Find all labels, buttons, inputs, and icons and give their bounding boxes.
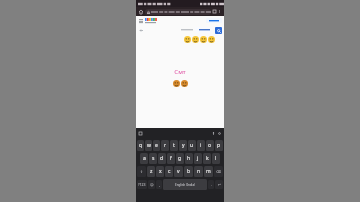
- button[interactable]: Menu: [138, 18, 144, 24]
- button[interactable]: t: [170, 140, 178, 151]
- staticText: ?123: [138, 182, 146, 187]
- button[interactable]: h: [185, 153, 193, 164]
- button[interactable]: m: [204, 166, 213, 177]
- staticText: h: [187, 155, 191, 162]
- staticText: n: [197, 168, 201, 175]
- button[interactable]: [145, 9, 211, 15]
- staticText: ↵: [218, 183, 221, 187]
- staticText: f: [170, 155, 172, 162]
- staticText: c: [168, 168, 171, 175]
- staticText: k: [206, 155, 209, 162]
- button[interactable]: e: [153, 140, 160, 151]
- staticText: ⇧: [140, 170, 143, 174]
- button[interactable]: v: [174, 166, 183, 177]
- button[interactable]: g: [176, 153, 184, 164]
- button[interactable]: b: [184, 166, 193, 177]
- button[interactable]: z: [147, 166, 155, 177]
- staticText: ☺: [150, 183, 154, 187]
- button[interactable]: English (India): [163, 179, 207, 190]
- button[interactable]: r: [161, 140, 169, 151]
- button[interactable]: j: [194, 153, 202, 164]
- button[interactable]: u: [188, 140, 196, 151]
- staticText: o: [208, 142, 212, 149]
- button[interactable]: [195, 27, 213, 33]
- button[interactable]: o: [206, 140, 214, 151]
- button[interactable]: c: [165, 166, 173, 177]
- staticText: a: [143, 155, 146, 162]
- button[interactable]: Home: [138, 9, 144, 15]
- staticText: b: [187, 168, 191, 175]
- staticText: ,: [159, 182, 160, 187]
- button[interactable]: a: [140, 153, 148, 164]
- button[interactable]: Tabs: [212, 9, 217, 14]
- staticText: s: [152, 155, 155, 162]
- button[interactable]: x: [156, 166, 164, 177]
- staticText: i: [200, 142, 202, 149]
- button[interactable]: q: [137, 140, 144, 151]
- staticText: j: [197, 155, 199, 162]
- staticText: t: [173, 142, 175, 149]
- button[interactable]: ↵: [215, 180, 223, 189]
- staticText: w: [147, 142, 151, 149]
- staticText: r: [164, 142, 167, 149]
- button[interactable]: w: [145, 140, 152, 151]
- staticText: u: [190, 142, 194, 149]
- button[interactable]: Settings: [217, 131, 222, 136]
- staticText: e: [155, 142, 158, 149]
- button[interactable]: Search: [215, 27, 222, 34]
- staticText: .: [211, 182, 212, 187]
- button[interactable]: [206, 18, 222, 23]
- button[interactable]: ?123: [137, 180, 147, 189]
- staticText: m: [206, 168, 211, 175]
- button[interactable]: f: [167, 153, 175, 164]
- button[interactable]: i: [197, 140, 205, 151]
- staticText: z: [150, 168, 153, 175]
- button[interactable]: k: [203, 153, 211, 164]
- button[interactable]: ,: [156, 180, 162, 189]
- staticText: y: [182, 142, 185, 149]
- button[interactable]: p: [215, 140, 223, 151]
- button[interactable]: More options: [217, 9, 222, 14]
- button[interactable]: .: [208, 180, 214, 189]
- button[interactable]: ⌫: [214, 166, 223, 177]
- staticText: l: [215, 155, 217, 162]
- button[interactable]: l: [212, 153, 220, 164]
- button[interactable]: ⇧: [137, 166, 146, 177]
- staticText: d: [160, 155, 164, 162]
- button[interactable]: Clipboard: [138, 131, 143, 136]
- staticText: English (India): [175, 183, 195, 187]
- staticText: v: [177, 168, 180, 175]
- button[interactable]: ☺: [148, 180, 155, 189]
- button[interactable]: Back: [138, 27, 144, 33]
- staticText: x: [159, 168, 162, 175]
- staticText: q: [139, 142, 143, 149]
- button[interactable]: y: [179, 140, 187, 151]
- button[interactable]: d: [158, 153, 166, 164]
- staticText: g: [178, 155, 182, 162]
- staticText: Смт: [174, 68, 186, 76]
- staticText: p: [217, 142, 221, 149]
- staticText: ⌫: [216, 170, 221, 174]
- button[interactable]: s: [149, 153, 157, 164]
- button[interactable]: Voice input: [211, 131, 216, 136]
- button[interactable]: n: [194, 166, 203, 177]
